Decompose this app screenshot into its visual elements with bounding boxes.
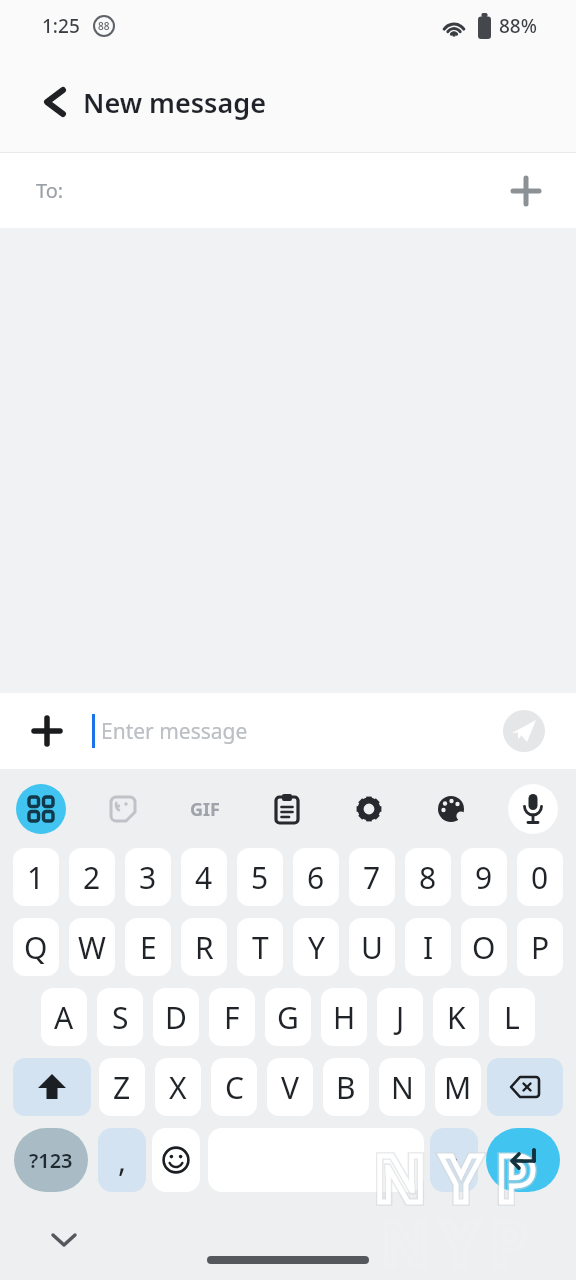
button[interactable]: B bbox=[323, 1058, 369, 1116]
staticText: U bbox=[361, 927, 383, 968]
button[interactable]: 6 bbox=[293, 848, 339, 906]
staticText: 8 bbox=[419, 857, 437, 898]
button[interactable] bbox=[486, 1128, 560, 1192]
staticText: S bbox=[112, 997, 129, 1038]
button[interactable]: 5 bbox=[237, 848, 283, 906]
staticText: , bbox=[118, 1140, 127, 1181]
button[interactable]: A bbox=[41, 988, 87, 1046]
staticText: 7 bbox=[363, 857, 381, 898]
staticText: Enter message bbox=[101, 717, 248, 746]
button[interactable] bbox=[33, 717, 61, 745]
staticText: A bbox=[54, 997, 74, 1038]
staticText: 2 bbox=[83, 857, 101, 898]
button[interactable] bbox=[430, 1128, 478, 1192]
button[interactable] bbox=[40, 87, 70, 117]
staticText: P bbox=[531, 927, 550, 968]
button[interactable] bbox=[262, 784, 312, 834]
button[interactable]: , bbox=[98, 1128, 146, 1192]
button[interactable] bbox=[508, 784, 558, 834]
button[interactable]: V bbox=[267, 1058, 313, 1116]
staticText: D bbox=[165, 997, 187, 1038]
staticText: C bbox=[225, 1067, 244, 1108]
button[interactable]: 0 bbox=[517, 848, 563, 906]
staticText: New message bbox=[83, 84, 266, 121]
button[interactable] bbox=[13, 1058, 91, 1116]
button[interactable] bbox=[503, 710, 545, 752]
staticText: W bbox=[78, 927, 106, 968]
button[interactable]: G bbox=[265, 988, 311, 1046]
button[interactable]: Y bbox=[293, 918, 339, 976]
button[interactable]: I bbox=[405, 918, 451, 976]
staticText: GIF bbox=[190, 797, 220, 822]
staticText: K bbox=[447, 997, 466, 1038]
button[interactable]: 4 bbox=[181, 848, 227, 906]
button[interactable]: F bbox=[209, 988, 255, 1046]
button[interactable] bbox=[98, 784, 148, 834]
staticText: O bbox=[472, 927, 496, 968]
button[interactable]: 9 bbox=[461, 848, 507, 906]
staticText: 0 bbox=[531, 857, 549, 898]
staticText: 1:25 bbox=[42, 13, 80, 39]
button[interactable]: X bbox=[155, 1058, 201, 1116]
button[interactable]: T bbox=[237, 918, 283, 976]
button[interactable]: GIF bbox=[180, 784, 230, 834]
button[interactable]: 3 bbox=[125, 848, 171, 906]
button[interactable]: H bbox=[321, 988, 367, 1046]
button[interactable]: N bbox=[379, 1058, 425, 1116]
staticText: Z bbox=[113, 1067, 131, 1108]
staticText: 5 bbox=[251, 857, 269, 898]
button[interactable]: O bbox=[461, 918, 507, 976]
staticText: X bbox=[169, 1067, 187, 1108]
button[interactable]: 8 bbox=[405, 848, 451, 906]
staticText: NYP bbox=[374, 1134, 551, 1221]
staticText: L bbox=[504, 997, 520, 1038]
button[interactable]: L bbox=[489, 988, 535, 1046]
button[interactable]: D bbox=[153, 988, 199, 1046]
button[interactable]: Z bbox=[99, 1058, 145, 1116]
button[interactable]: U bbox=[349, 918, 395, 976]
button[interactable]: M bbox=[435, 1058, 481, 1116]
button[interactable]: ?123 bbox=[14, 1128, 88, 1192]
staticText: B bbox=[336, 1067, 356, 1108]
staticText: M bbox=[444, 1067, 472, 1108]
button[interactable]: E bbox=[125, 918, 171, 976]
button[interactable]: 2 bbox=[69, 848, 115, 906]
staticText: R bbox=[195, 927, 214, 968]
button[interactable]: R bbox=[181, 918, 227, 976]
button[interactable] bbox=[152, 1128, 200, 1192]
button[interactable]: P bbox=[517, 918, 563, 976]
button[interactable]: S bbox=[97, 988, 143, 1046]
staticText: J bbox=[396, 997, 405, 1038]
button[interactable] bbox=[208, 1128, 424, 1192]
staticText: NYP bbox=[374, 1134, 551, 1221]
button[interactable] bbox=[50, 1230, 78, 1250]
button[interactable] bbox=[426, 784, 476, 834]
button[interactable]: K bbox=[433, 988, 479, 1046]
staticText: F bbox=[224, 997, 240, 1038]
button[interactable]: J bbox=[377, 988, 423, 1046]
staticText: I bbox=[423, 927, 434, 968]
button[interactable]: 1 bbox=[13, 848, 59, 906]
staticText: Y bbox=[308, 927, 325, 968]
staticText: V bbox=[281, 1067, 299, 1108]
button[interactable]: C bbox=[211, 1058, 257, 1116]
staticText: 1 bbox=[27, 857, 45, 898]
staticText: N bbox=[391, 1067, 414, 1108]
staticText: Q bbox=[24, 927, 48, 968]
button[interactable]: To: bbox=[0, 153, 576, 228]
button[interactable] bbox=[16, 784, 66, 834]
button[interactable] bbox=[344, 784, 394, 834]
button[interactable] bbox=[487, 1058, 563, 1116]
button[interactable]: Q bbox=[13, 918, 59, 976]
staticText: 6 bbox=[307, 857, 325, 898]
staticText: T bbox=[252, 927, 269, 968]
staticText: 88 bbox=[98, 19, 110, 33]
staticText: E bbox=[140, 927, 157, 968]
staticText: 9 bbox=[475, 857, 493, 898]
staticText: H bbox=[333, 997, 356, 1038]
staticText: 3 bbox=[139, 857, 157, 898]
staticText: ?123 bbox=[29, 1147, 73, 1174]
button[interactable]: W bbox=[69, 918, 115, 976]
staticText: 88% bbox=[499, 13, 537, 39]
button[interactable]: 7 bbox=[349, 848, 395, 906]
